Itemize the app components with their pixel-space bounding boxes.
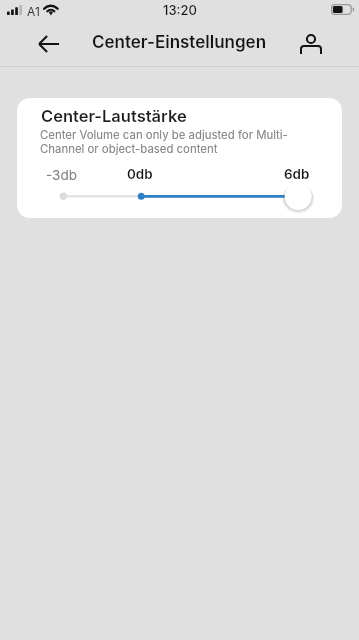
- button[interactable]: Account: [288, 21, 333, 66]
- staticText: A1: [27, 4, 40, 19]
- staticText: 0db: [127, 166, 153, 182]
- button[interactable]: Back: [26, 21, 71, 66]
- staticText: Center-Lautstärke: [41, 106, 187, 126]
- staticText: Center Volume can only be adjusted for M…: [40, 128, 288, 155]
- staticText: 6db: [284, 166, 310, 182]
- staticText: Center-Einstellungen: [92, 32, 267, 53]
- button[interactable]: Center volume slider: [17, 182, 342, 218]
- staticText: 13:20: [163, 2, 197, 18]
- staticText: -3db: [46, 167, 78, 183]
